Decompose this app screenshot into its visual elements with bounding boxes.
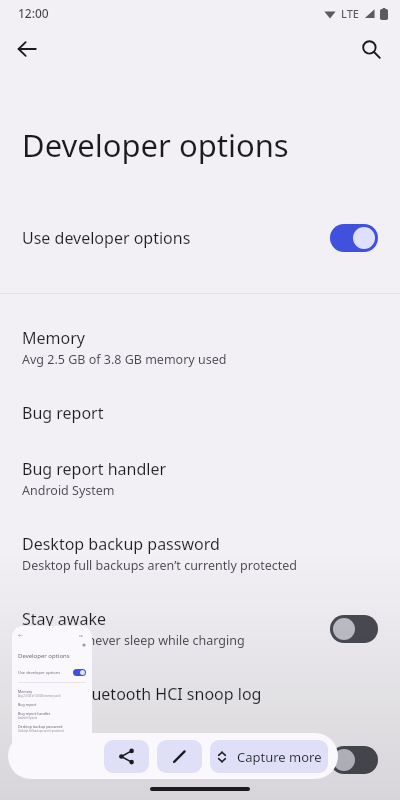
- button[interactable]: Back: [6, 28, 48, 70]
- staticText: Developer options: [18, 652, 70, 660]
- button[interactable]: Stay awake: [0, 599, 400, 658]
- staticText: Desktop full backups aren’t currently pr…: [22, 557, 298, 574]
- staticText: Avg 2.5 GB of 3.8 GB memory used: [22, 351, 227, 368]
- staticText: Developer options: [22, 124, 289, 166]
- staticText: Desktop backup password: [22, 533, 220, 555]
- button[interactable]: OEM unlocking: [0, 730, 400, 789]
- staticText: Allow the bootloader to be unlocked: [22, 763, 235, 780]
- button[interactable]: Bug report handler: [0, 449, 400, 508]
- staticText: LTE: [341, 6, 359, 21]
- button[interactable]: Use developer options: [0, 210, 400, 266]
- staticText: Enable Bluetooth HCI snoop log: [22, 683, 262, 705]
- staticText: Memory: [18, 689, 33, 694]
- button[interactable]: Edit: [157, 740, 202, 773]
- button[interactable]: Search: [350, 28, 392, 70]
- staticText: ▾▪: [79, 634, 83, 637]
- staticText: Use developer options: [22, 227, 330, 249]
- staticText: Android System: [22, 482, 115, 499]
- staticText: Screen will never sleep while charging: [22, 632, 245, 649]
- button[interactable]: Desktop backup password: [0, 524, 400, 583]
- staticText: Use developer options: [18, 670, 61, 675]
- staticText: Android System: [18, 716, 38, 720]
- button[interactable]: Screenshot preview: [12, 626, 92, 776]
- button[interactable]: [330, 746, 378, 774]
- button[interactable]: Capture more: [210, 740, 328, 773]
- staticText: OEM unlocking: [22, 739, 136, 761]
- button[interactable]: [330, 224, 378, 252]
- staticText: Memory: [22, 327, 85, 349]
- staticText: Stay awake: [22, 608, 106, 630]
- staticText: Avg 2.5 GB of 3.8 GB memory used: [18, 694, 61, 698]
- staticText: Bug report: [22, 402, 104, 424]
- staticText: Bug report handler: [18, 711, 51, 716]
- button[interactable]: Memory: [0, 318, 400, 377]
- button[interactable]: [330, 615, 378, 643]
- staticText: Capture more: [237, 748, 322, 766]
- staticText: 12:00: [18, 5, 49, 21]
- staticText: Desktop full backups aren't protected: [18, 729, 64, 733]
- staticText: Bug report: [18, 702, 37, 707]
- button[interactable]: Bug report: [0, 393, 400, 433]
- staticText: Desktop backup password: [18, 724, 63, 729]
- button[interactable]: Enable Bluetooth HCI snoop log: [0, 674, 400, 714]
- button[interactable]: Share: [104, 740, 149, 773]
- staticText: Bug report handler: [22, 458, 167, 480]
